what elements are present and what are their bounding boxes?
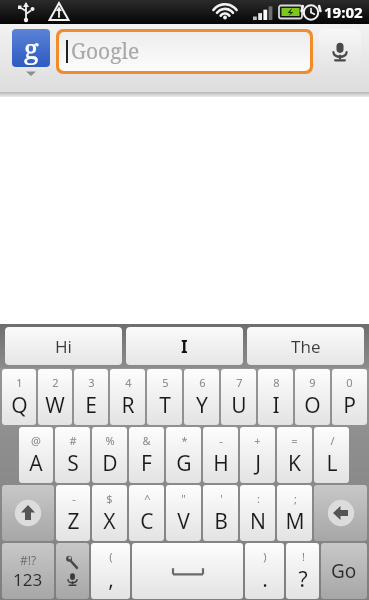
staticText: F (141, 449, 152, 478)
button[interactable]: 3 (74, 369, 108, 425)
staticText: & (142, 433, 151, 448)
staticText: The (291, 335, 321, 358)
button[interactable]: 1 (2, 369, 36, 425)
staticText: @ (31, 433, 41, 448)
staticText: $ (106, 491, 113, 506)
button[interactable]: Hi (5, 327, 122, 365)
staticText: % (105, 433, 115, 448)
staticText: I (181, 335, 188, 358)
staticText: ) (263, 549, 267, 564)
staticText: M (285, 507, 305, 536)
button[interactable]: Backspace (314, 485, 367, 541)
staticText: Go (331, 558, 357, 584)
button[interactable]: ; (277, 485, 312, 541)
staticText: 2 (52, 375, 59, 390)
button[interactable]: ( (91, 543, 130, 599)
button[interactable]: ) (245, 543, 284, 599)
staticText: Hi (55, 335, 72, 358)
button[interactable]: + (240, 427, 275, 483)
staticText: R (121, 391, 135, 420)
button[interactable]: % (92, 427, 127, 483)
button[interactable]: 6 (184, 369, 219, 425)
staticText: = (291, 433, 298, 448)
staticText: 0 (346, 375, 353, 390)
staticText: 5 (162, 375, 169, 390)
staticText: 9 (309, 375, 316, 390)
staticText: - (72, 491, 76, 506)
staticText: D (102, 449, 118, 478)
button[interactable]: ! (286, 543, 319, 599)
button[interactable]: 7 (221, 369, 256, 425)
button[interactable]: = (277, 427, 312, 483)
staticText: 4 (125, 375, 132, 390)
staticText: : (257, 491, 260, 506)
button[interactable]: 4 (110, 369, 145, 425)
button[interactable]: * (166, 427, 201, 483)
staticText: 1 (16, 375, 23, 390)
staticText: g (24, 30, 39, 67)
button[interactable]: I (126, 327, 243, 365)
staticText: O (304, 391, 321, 420)
button[interactable]: 5 (147, 369, 182, 425)
button[interactable]: " (166, 485, 201, 541)
staticText: ! (302, 549, 305, 564)
staticText: ^ (144, 491, 151, 506)
button[interactable]: @ (19, 427, 53, 483)
button[interactable]: / (314, 427, 349, 483)
button[interactable]: ' (203, 485, 238, 541)
staticText: A (29, 449, 43, 478)
button[interactable]: 9 (295, 369, 330, 425)
staticText: ? (298, 565, 308, 594)
staticText: 6 (199, 375, 206, 390)
button[interactable]: 0 (332, 369, 367, 425)
staticText: . (262, 565, 268, 594)
staticText: * (181, 433, 188, 448)
staticText: 7 (236, 375, 243, 390)
staticText: N (250, 507, 266, 536)
button[interactable]: 8 (258, 369, 293, 425)
staticText: H (213, 449, 229, 478)
staticText: + (254, 433, 261, 448)
button[interactable]: The (247, 327, 364, 365)
staticText: 19:02 (324, 2, 363, 22)
staticText: 3 (88, 375, 95, 390)
staticText: E (85, 391, 97, 420)
staticText: #!? (20, 552, 37, 568)
button[interactable]: Shift (2, 485, 54, 541)
staticText: 8 (273, 375, 280, 390)
staticText: Y (196, 391, 208, 420)
staticText: - (219, 433, 223, 448)
staticText: / (330, 433, 335, 448)
staticText: G (176, 449, 192, 478)
button[interactable]: Google (59, 32, 310, 71)
button[interactable]: Voice search (319, 29, 361, 74)
staticText: ' (220, 491, 223, 506)
button[interactable]: # (55, 427, 90, 483)
staticText: T (159, 391, 171, 420)
staticText: L (326, 449, 338, 478)
button[interactable]: : (240, 485, 275, 541)
button[interactable]: & (129, 427, 164, 483)
button[interactable]: Google search provider (8, 29, 54, 77)
staticText: S (67, 449, 79, 478)
staticText: X (103, 507, 116, 536)
button[interactable]: - (203, 427, 238, 483)
staticText: B (214, 507, 228, 536)
staticText: # (69, 433, 77, 448)
staticText: J (255, 449, 261, 478)
staticText: Z (67, 507, 80, 536)
button[interactable]: Space (132, 543, 243, 599)
button[interactable]: 2 (38, 369, 72, 425)
button[interactable]: $ (92, 485, 127, 541)
button[interactable]: ^ (129, 485, 164, 541)
staticText: 123 (13, 568, 43, 591)
button[interactable]: Go (321, 543, 367, 599)
button[interactable]: Settings and voice input (56, 543, 89, 599)
staticText: V (177, 507, 190, 536)
button[interactable]: - (56, 485, 90, 541)
button[interactable]: Symbols (2, 543, 54, 599)
staticText: Q (11, 391, 28, 420)
staticText: Google (71, 37, 140, 66)
staticText: , (108, 565, 114, 594)
staticText: I (272, 391, 280, 420)
